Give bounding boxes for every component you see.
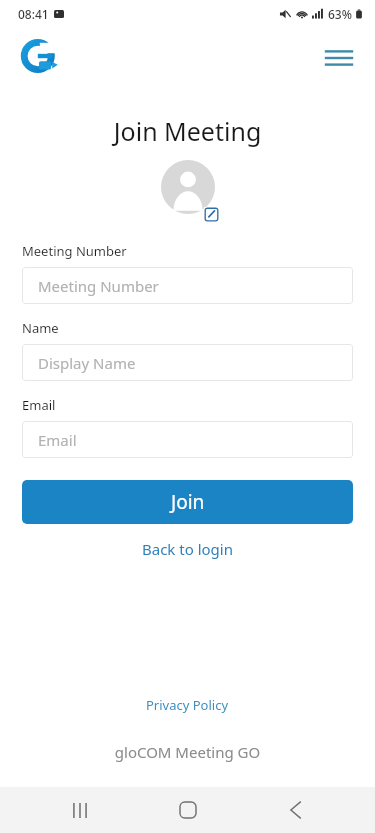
staticText: Privacy Policy — [146, 696, 229, 714]
staticText: Email — [22, 396, 56, 414]
staticText: Back to login — [142, 539, 233, 559]
staticText: Email — [38, 430, 77, 450]
button[interactable]: Back — [267, 787, 323, 833]
staticText: Join — [171, 489, 205, 515]
button[interactable]: Display Name — [22, 344, 353, 381]
button[interactable]: Meeting Number — [22, 267, 353, 304]
button[interactable]: Privacy Policy — [0, 691, 375, 719]
staticText: gloCOM Meeting GO — [0, 742, 375, 762]
staticText: Meeting Number — [38, 276, 159, 296]
staticText: Meeting Number — [22, 242, 127, 260]
button[interactable]: Menu — [317, 36, 361, 80]
staticText: Join Meeting — [0, 114, 375, 148]
button[interactable]: gloCOM Meeting logo — [18, 35, 64, 81]
button[interactable]: Home — [160, 787, 216, 833]
button[interactable]: Email — [22, 421, 353, 458]
button[interactable]: Back to login — [22, 532, 353, 566]
button[interactable]: Edit avatar — [157, 160, 219, 222]
staticText: 08:41 — [18, 6, 49, 22]
staticText: Name — [22, 319, 59, 337]
staticText: Display Name — [38, 353, 136, 373]
staticText: 63% — [328, 6, 352, 22]
button[interactable]: Recent apps — [52, 787, 108, 833]
button[interactable]: Join — [22, 480, 353, 524]
